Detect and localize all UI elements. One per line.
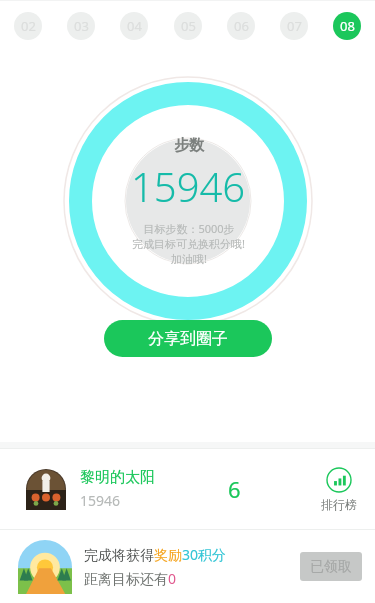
staticText: 06 <box>234 17 249 35</box>
staticText: 07 <box>287 17 302 35</box>
staticText: 04 <box>127 17 142 35</box>
staticText: 距离目标还有0 <box>84 569 177 588</box>
button[interactable]: 完成将获得奖励30积分 <box>0 530 375 603</box>
staticText: 加油哦! <box>171 251 207 266</box>
button[interactable]: 05 <box>174 12 202 40</box>
staticText: 完成将获得奖励30积分 <box>84 545 227 564</box>
staticText: 05 <box>181 17 196 35</box>
button[interactable]: 黎明的太阳 <box>0 449 375 529</box>
staticText: 排行榜 <box>321 497 357 512</box>
staticText: 黎明的太阳 <box>80 468 155 487</box>
staticText: 已领取 <box>310 558 352 576</box>
button[interactable]: 已领取 <box>300 552 362 581</box>
staticText: 6 <box>228 474 241 504</box>
staticText: 15946 <box>80 491 121 510</box>
button[interactable]: 分享到圈子 <box>104 320 272 357</box>
button[interactable]: 08 <box>333 12 361 40</box>
staticText: 目标步数：5000步 <box>143 221 235 236</box>
staticText: 步数 <box>174 136 204 155</box>
button[interactable]: 04 <box>120 12 148 40</box>
staticText: 08 <box>340 17 355 35</box>
button[interactable]: 02 <box>14 12 42 40</box>
staticText: 03 <box>74 17 89 35</box>
staticText: 完成目标可兑换积分哦! <box>132 236 245 251</box>
button[interactable]: 07 <box>280 12 308 40</box>
button[interactable]: 06 <box>227 12 255 40</box>
button[interactable]: 03 <box>67 12 95 40</box>
staticText: 分享到圈子 <box>148 329 228 349</box>
button[interactable]: 排行榜 <box>321 467 357 512</box>
staticText: 02 <box>21 17 36 35</box>
staticText: 15946 <box>131 159 246 213</box>
